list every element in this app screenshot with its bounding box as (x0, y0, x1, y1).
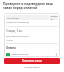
staticText: Применить (50, 15, 58, 20)
staticText: Итого (6, 38, 13, 41)
button[interactable]: Картой онлайн (6, 52, 58, 57)
staticText: Оплатить заказ (22, 59, 42, 63)
other: Изменить способ оплаты (55, 53, 58, 56)
staticText: Условия оферты (6, 66, 58, 69)
staticText: Картой онлайн (11, 52, 29, 55)
button[interactable]: Промокод (6, 15, 49, 20)
staticText: Оплата (6, 46, 16, 50)
staticText: Товары, 3 шт. (6, 29, 23, 33)
staticText: Промокод (7, 16, 19, 19)
staticText: Проверьте и подтвердите ваш заказ перед … (3, 2, 59, 10)
button[interactable]: Применить (50, 15, 58, 20)
button[interactable]: Оплатить заказ (4, 58, 60, 64)
staticText: Доставка курьером (6, 34, 29, 37)
staticText: Скидка по промокоду (6, 21, 30, 24)
